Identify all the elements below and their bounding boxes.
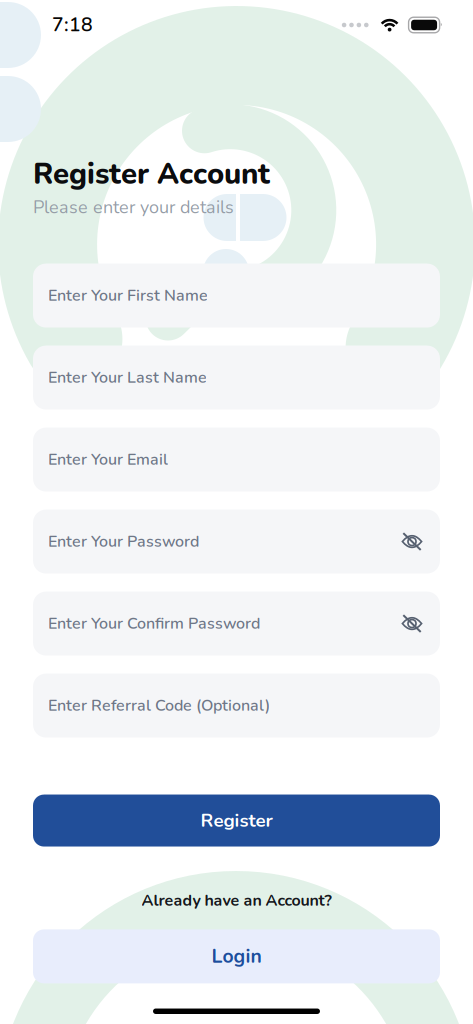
staticText: Enter Your Confirm Password: [48, 613, 260, 634]
staticText: Enter Referral Code (Optional): [48, 695, 270, 716]
staticText: Please enter your details: [33, 195, 234, 220]
staticText: Login: [211, 943, 261, 970]
button[interactable]: Enter Your Password: [33, 510, 440, 574]
staticText: Already have an Account?: [141, 890, 331, 911]
staticText: Register: [200, 808, 272, 833]
staticText: Enter Your Last Name: [48, 367, 207, 388]
staticText: Enter Your Password: [48, 531, 199, 552]
staticText: Enter Your Email: [48, 449, 168, 470]
button[interactable]: Enter Your First Name: [33, 264, 440, 328]
staticText: Register Account: [33, 154, 270, 194]
button[interactable]: Enter Your Email: [33, 428, 440, 492]
button[interactable]: Register: [33, 795, 440, 847]
staticText: 7:18: [52, 12, 93, 38]
button[interactable]: Enter Your Confirm Password: [33, 592, 440, 656]
button[interactable]: Enter Your Last Name: [33, 346, 440, 410]
button[interactable]: Enter Referral Code (Optional): [33, 674, 440, 738]
staticText: Enter Your First Name: [48, 285, 208, 306]
button[interactable]: Login: [33, 929, 440, 983]
